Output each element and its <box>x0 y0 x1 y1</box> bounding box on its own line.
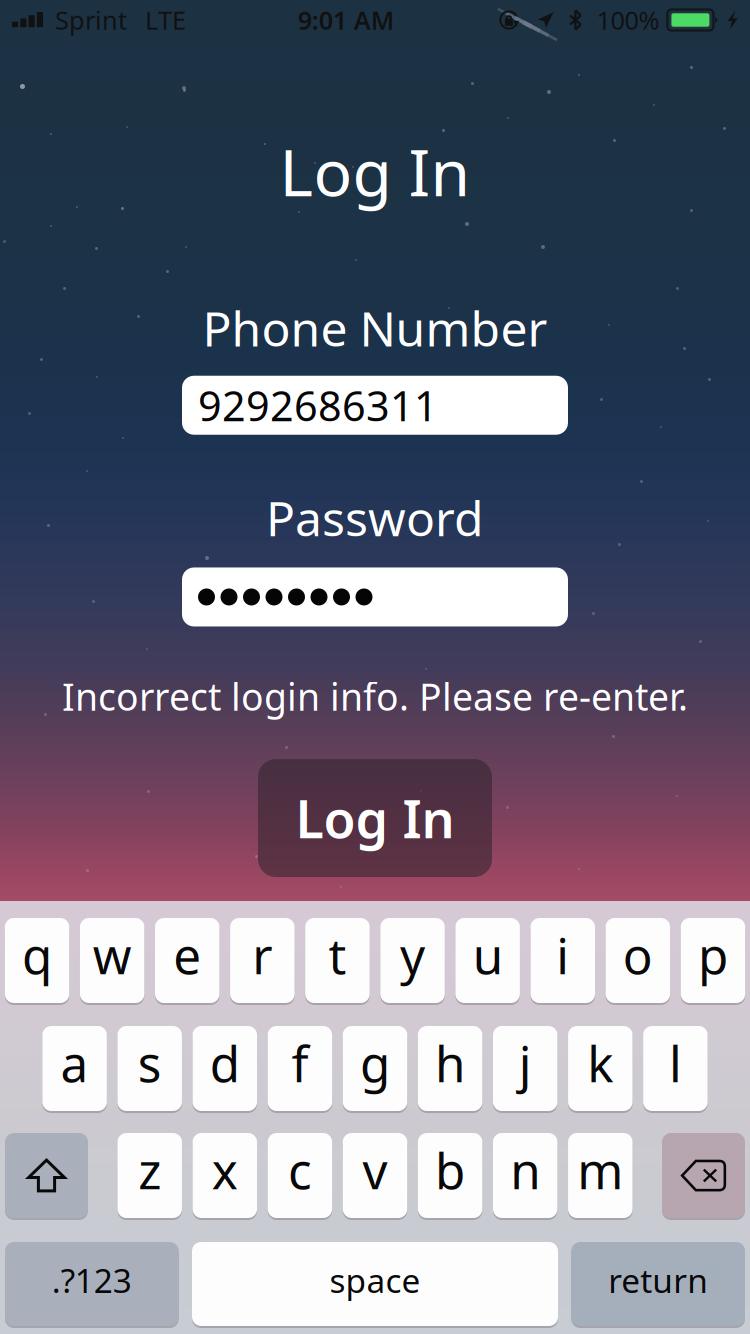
staticText: k <box>587 1030 613 1096</box>
button[interactable]: r <box>230 918 295 1005</box>
staticText: s <box>138 1030 162 1096</box>
staticText: Incorrect login info. Please re-enter. <box>62 671 688 721</box>
button[interactable]: i <box>530 918 595 1005</box>
staticText: Sprint <box>55 3 127 37</box>
staticText: g <box>360 1030 390 1096</box>
button[interactable]: Shift <box>5 1133 88 1220</box>
staticText: e <box>173 922 201 988</box>
staticText: v <box>362 1137 387 1203</box>
button[interactable]: k <box>568 1026 633 1113</box>
button[interactable]: w <box>80 918 144 1005</box>
staticText: t <box>328 922 346 988</box>
button[interactable]: g <box>343 1026 407 1113</box>
staticText: Log In <box>279 129 470 214</box>
staticText: l <box>669 1030 682 1096</box>
button[interactable]: space <box>192 1242 558 1328</box>
button[interactable]: n <box>493 1133 557 1220</box>
button[interactable]: q <box>5 918 69 1005</box>
staticText: Phone Number <box>202 296 547 360</box>
button[interactable]: u <box>455 918 520 1005</box>
button[interactable]: p <box>681 918 745 1005</box>
button[interactable]: m <box>568 1133 632 1220</box>
staticText: 9:01 AM <box>298 3 395 37</box>
staticText: d <box>210 1030 240 1096</box>
staticText: Password <box>266 486 484 549</box>
button[interactable]: return <box>571 1242 745 1328</box>
button[interactable]: j <box>493 1026 557 1113</box>
staticText: a <box>61 1030 89 1096</box>
staticText: z <box>138 1137 161 1203</box>
staticText: q <box>22 922 52 988</box>
button[interactable]: v <box>343 1133 407 1220</box>
staticText: f <box>291 1030 308 1096</box>
staticText: b <box>435 1137 465 1203</box>
staticText: space <box>329 1258 420 1302</box>
staticText: .?123 <box>52 1258 132 1302</box>
button[interactable]: Delete <box>662 1133 745 1220</box>
staticText: m <box>577 1137 623 1203</box>
button[interactable]: l <box>643 1026 708 1113</box>
staticText: return <box>608 1258 708 1302</box>
staticText: i <box>556 922 569 988</box>
button[interactable]: a <box>42 1026 107 1113</box>
button[interactable]: y <box>380 918 445 1005</box>
staticText: j <box>519 1030 532 1096</box>
staticText: h <box>435 1030 465 1096</box>
staticText: 9292686311 <box>198 378 438 433</box>
staticText: n <box>510 1137 540 1203</box>
staticText: LTE <box>145 3 186 37</box>
button[interactable]: x <box>192 1133 257 1220</box>
button[interactable]: o <box>606 918 670 1005</box>
button[interactable]: z <box>117 1133 182 1220</box>
button[interactable]: s <box>117 1026 182 1113</box>
staticText: p <box>698 922 728 988</box>
staticText: y <box>400 922 425 988</box>
button[interactable]: e <box>155 918 219 1005</box>
staticText: w <box>93 922 132 988</box>
staticText: Log In <box>295 783 454 853</box>
staticText: x <box>212 1137 238 1203</box>
staticText: r <box>252 922 272 988</box>
button[interactable]: h <box>418 1026 482 1113</box>
staticText: 100% <box>596 3 659 37</box>
staticText: o <box>623 922 653 988</box>
button[interactable]: c <box>268 1133 332 1220</box>
staticText: c <box>288 1137 312 1203</box>
button[interactable]: .?123 <box>5 1242 179 1328</box>
button[interactable]: Log In <box>258 759 492 877</box>
button[interactable]: t <box>305 918 370 1005</box>
button[interactable]: d <box>193 1026 257 1113</box>
button[interactable]: b <box>418 1133 482 1220</box>
button[interactable]: f <box>268 1026 332 1113</box>
staticText: u <box>473 922 503 988</box>
